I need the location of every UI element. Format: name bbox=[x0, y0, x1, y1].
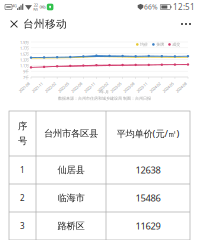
button[interactable]: Close bbox=[6, 14, 22, 34]
staticText: 2023-02 bbox=[94, 80, 107, 86]
staticText: 均价 bbox=[140, 42, 148, 47]
staticText: 3 bbox=[20, 221, 25, 231]
staticText: 7千 bbox=[23, 75, 29, 80]
staticText: 2 bbox=[20, 193, 25, 203]
staticText: 仙居县 bbox=[57, 164, 84, 176]
button[interactable]: 1 bbox=[9, 156, 190, 184]
staticText: 2022-02 bbox=[42, 80, 55, 86]
staticText: 号 bbox=[18, 135, 27, 147]
staticText: 2021-11 bbox=[29, 80, 42, 86]
staticText: 2023-05 bbox=[108, 80, 121, 86]
staticText: K/s bbox=[33, 6, 38, 12]
staticText: 2023-08 bbox=[121, 80, 134, 86]
staticText: 2022-05 bbox=[55, 80, 68, 86]
staticText: 2024-05 bbox=[160, 80, 173, 86]
staticText: 15486 bbox=[135, 192, 160, 204]
staticText: 临海市 bbox=[57, 192, 84, 204]
staticText: 1.7万 bbox=[20, 46, 29, 51]
staticText: 1.1万 bbox=[20, 63, 29, 68]
staticText: 2024-02 bbox=[147, 80, 160, 86]
staticText: 2022-11 bbox=[81, 80, 94, 86]
staticText: 2024-08 bbox=[173, 80, 186, 86]
button[interactable]: 3 bbox=[9, 212, 190, 240]
staticText: 平均单价(元/㎡) bbox=[116, 127, 179, 140]
staticText: 1.9万 bbox=[20, 40, 29, 45]
staticText: 1.5万 bbox=[20, 51, 29, 57]
button[interactable]: 2 bbox=[9, 184, 190, 212]
staticText: 2021-08 bbox=[16, 80, 29, 86]
staticText: 22 bbox=[34, 2, 38, 8]
staticText: 2022-08 bbox=[68, 80, 81, 86]
staticText: 序 bbox=[18, 120, 27, 132]
staticText: 66% bbox=[144, 3, 158, 11]
staticText: 年-月 bbox=[100, 89, 109, 94]
staticText: 2023-11 bbox=[134, 80, 147, 86]
staticText: 4G bbox=[12, 3, 17, 8]
staticText: 11629 bbox=[135, 220, 160, 232]
staticText: 路桥区 bbox=[57, 220, 84, 232]
staticText: 12:51 bbox=[173, 2, 195, 12]
button[interactable]: More options bbox=[175, 14, 197, 34]
staticText: 数据来源：台州市住房和城乡建设局 制图：台州日报 bbox=[58, 96, 151, 101]
staticText: 挂牌 bbox=[156, 42, 164, 47]
staticText: 9千 bbox=[23, 69, 29, 74]
staticText: 1 bbox=[20, 165, 25, 175]
staticText: 1.3万 bbox=[20, 57, 29, 63]
staticText: 12638 bbox=[135, 164, 160, 176]
staticText: 台州市各区县 bbox=[44, 128, 98, 139]
staticText: 台州移动 bbox=[23, 17, 67, 30]
staticText: 成交 bbox=[172, 42, 180, 47]
staticText: 0Kb bbox=[39, 4, 45, 10]
